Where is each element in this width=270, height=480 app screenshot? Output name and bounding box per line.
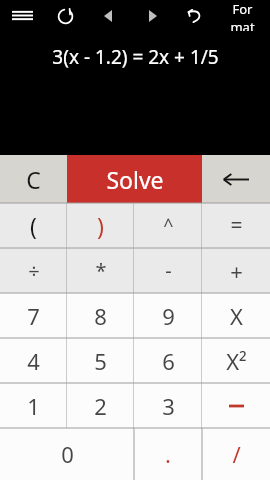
button[interactable]: ( xyxy=(0,203,67,248)
button[interactable]: = xyxy=(202,203,270,248)
button[interactable]: Backspace xyxy=(202,155,270,203)
button[interactable]: / xyxy=(202,428,270,480)
button[interactable]: ÷ xyxy=(0,248,67,293)
staticText: 5 xyxy=(94,346,107,376)
staticText: 6 xyxy=(162,346,175,376)
button[interactable]: 5 xyxy=(67,338,134,383)
staticText: X² xyxy=(226,346,247,376)
staticText: + xyxy=(230,256,243,286)
button[interactable]: Undo xyxy=(175,0,215,31)
button[interactable]: Menu xyxy=(0,0,44,31)
button[interactable]: ) xyxy=(67,203,134,248)
staticText: ( xyxy=(30,210,37,241)
button[interactable]: Move cursor right xyxy=(130,0,175,31)
button[interactable]: * xyxy=(67,248,134,293)
button[interactable]: 3 xyxy=(134,383,202,428)
button[interactable]: X xyxy=(202,293,270,338)
staticText: 3 xyxy=(162,391,175,421)
staticText: / xyxy=(232,439,241,469)
staticText: C xyxy=(26,164,41,195)
staticText: ) xyxy=(97,210,104,241)
staticText: 8 xyxy=(94,301,107,331)
staticText: Format xyxy=(227,0,258,31)
button[interactable]: 7 xyxy=(0,293,67,338)
staticText: - xyxy=(165,257,172,284)
staticText: * xyxy=(95,257,107,284)
staticText: X xyxy=(230,301,243,331)
staticText: ÷ xyxy=(28,257,40,284)
button[interactable]: 1 xyxy=(0,383,67,428)
button[interactable]: + xyxy=(202,248,270,293)
staticText: 7 xyxy=(27,301,40,331)
button[interactable]: ^ xyxy=(134,203,202,248)
button[interactable]: X² xyxy=(202,338,270,383)
staticText: 0 xyxy=(61,439,74,469)
button[interactable]: 2 xyxy=(67,383,134,428)
staticText: 9 xyxy=(162,301,175,331)
staticText: = xyxy=(230,211,243,240)
button[interactable]: Fraction bar xyxy=(202,383,270,428)
staticText: . xyxy=(165,439,171,469)
staticText: 3(x - 1.2) = 2x + 1/5 xyxy=(52,44,219,70)
button[interactable]: C xyxy=(0,155,67,203)
button[interactable]: 0 xyxy=(0,428,134,480)
button[interactable]: 6 xyxy=(134,338,202,383)
staticText: 1 xyxy=(27,391,40,421)
button[interactable]: Move cursor left xyxy=(86,0,130,31)
button[interactable]: Redo xyxy=(44,0,86,31)
button[interactable]: Solve xyxy=(67,155,202,203)
staticText: ^ xyxy=(163,213,174,238)
staticText: Solve xyxy=(106,164,164,195)
staticText: 2 xyxy=(94,391,107,421)
button[interactable]: . xyxy=(134,428,202,480)
button[interactable]: 8 xyxy=(67,293,134,338)
button[interactable]: 9 xyxy=(134,293,202,338)
button[interactable]: 4 xyxy=(0,338,67,383)
staticText: 4 xyxy=(27,346,40,376)
button[interactable]: - xyxy=(134,248,202,293)
button[interactable]: Format xyxy=(215,0,270,31)
